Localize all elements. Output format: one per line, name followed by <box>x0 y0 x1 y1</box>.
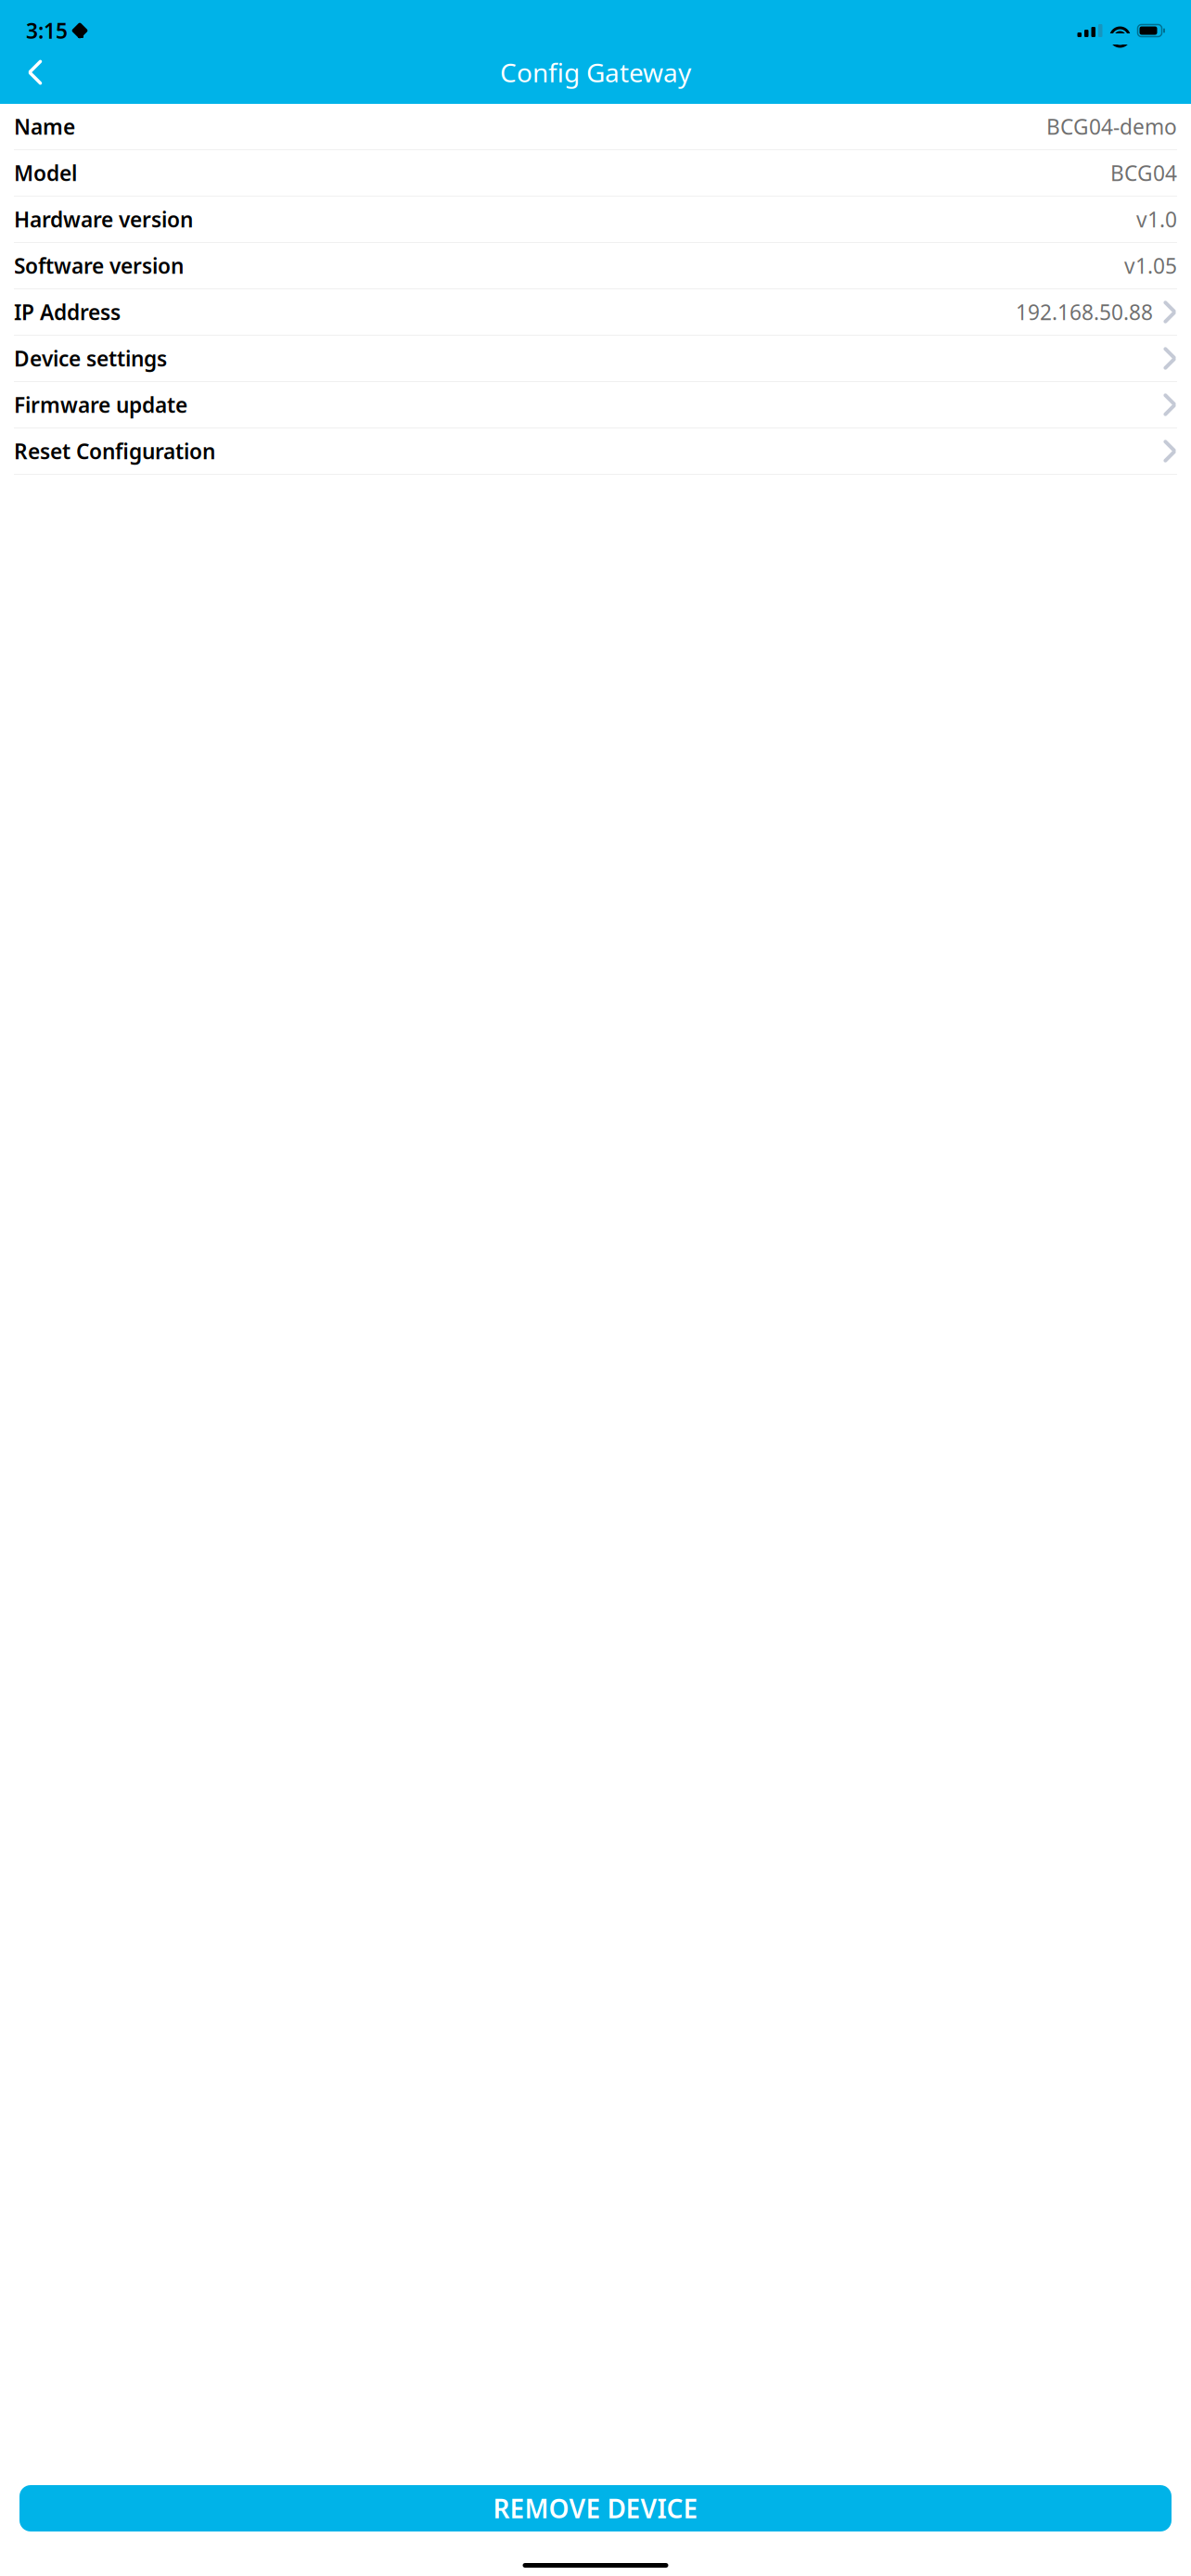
staticText: Device settings <box>14 344 167 372</box>
staticText: Reset Configuration <box>14 437 215 465</box>
staticText: BCG04-demo <box>1046 113 1177 140</box>
button[interactable]: IP Address <box>0 289 1191 336</box>
staticText: 3:15 <box>26 17 68 45</box>
button[interactable]: Firmware update <box>0 382 1191 428</box>
staticText: Name <box>14 113 75 140</box>
staticText: IP Address <box>14 298 121 326</box>
staticText: 192.168.50.88 <box>1016 298 1153 326</box>
button[interactable]: Device settings <box>0 336 1191 382</box>
staticText: Firmware update <box>14 391 187 419</box>
staticText: Model <box>14 159 77 187</box>
button[interactable]: Model <box>0 150 1191 197</box>
staticText: v1.05 <box>1124 252 1177 280</box>
staticText: BCG04 <box>1110 159 1177 187</box>
button[interactable]: Software version <box>0 243 1191 289</box>
staticText: v1.0 <box>1136 205 1177 233</box>
button[interactable]: Back <box>9 52 61 93</box>
staticText: Config Gateway <box>500 55 691 90</box>
button[interactable]: Reset Configuration <box>0 428 1191 475</box>
button[interactable]: Hardware version <box>0 197 1191 243</box>
staticText: REMOVE DEVICE <box>493 2491 698 2526</box>
staticText: Software version <box>14 252 184 280</box>
staticText: Hardware version <box>14 205 193 233</box>
button[interactable]: Name <box>0 104 1191 150</box>
button[interactable]: REMOVE DEVICE <box>19 2485 1172 2531</box>
